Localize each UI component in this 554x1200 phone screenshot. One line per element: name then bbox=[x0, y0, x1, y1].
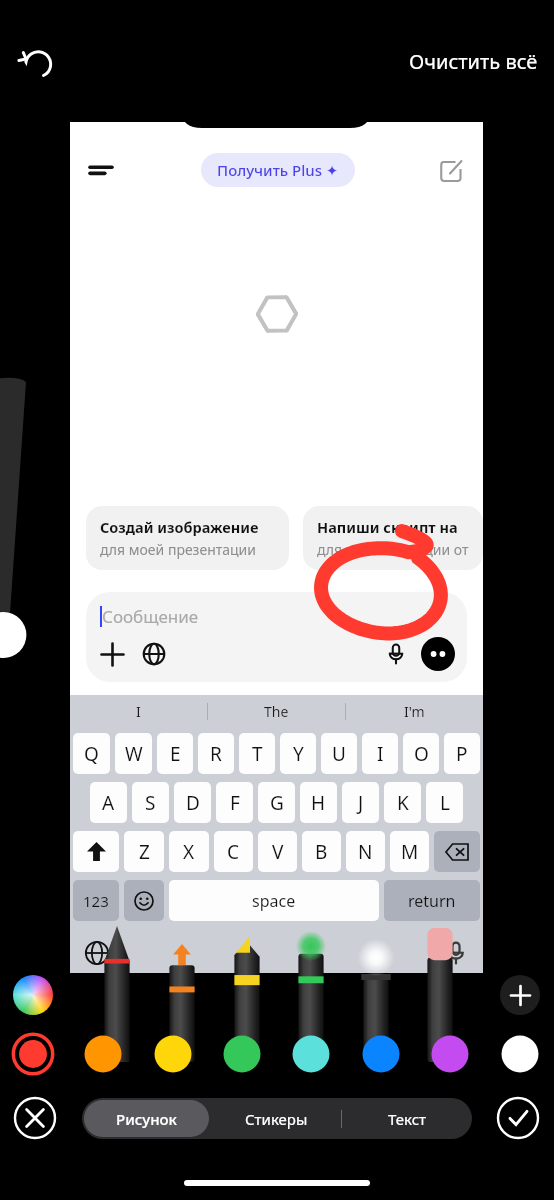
button[interactable]: Color picker bbox=[13, 975, 53, 1015]
staticText: U bbox=[332, 741, 346, 767]
button[interactable]: Color swatch bbox=[287, 1030, 335, 1078]
button[interactable]: F bbox=[216, 782, 253, 823]
button[interactable]: N bbox=[346, 831, 385, 872]
button[interactable]: I bbox=[362, 733, 398, 774]
button[interactable]: Menu bbox=[88, 156, 116, 184]
staticText: H bbox=[311, 790, 326, 816]
button[interactable]: Color swatch bbox=[149, 1030, 197, 1078]
button[interactable]: Attach bbox=[100, 642, 125, 667]
staticText: T bbox=[252, 741, 263, 767]
staticText: Напиши скрипт на Py bbox=[317, 517, 469, 537]
button[interactable]: Voice mode bbox=[421, 637, 455, 671]
staticText: P bbox=[456, 741, 468, 767]
button[interactable]: H bbox=[300, 782, 337, 823]
staticText: B bbox=[315, 839, 328, 865]
staticText: D bbox=[186, 790, 200, 816]
staticText: J bbox=[358, 790, 364, 816]
button[interactable]: Z bbox=[124, 831, 164, 872]
button[interactable]: Emoji bbox=[124, 880, 164, 921]
staticText: X bbox=[183, 839, 195, 865]
button[interactable]: Получить Plus ✦ bbox=[201, 153, 355, 187]
button[interactable]: Сообщение bbox=[86, 592, 467, 682]
button[interactable]: Drawing tool bbox=[96, 926, 138, 1062]
button[interactable]: E bbox=[157, 733, 193, 774]
button[interactable]: U bbox=[321, 733, 357, 774]
button[interactable]: V bbox=[258, 831, 297, 872]
button[interactable]: Undo bbox=[8, 34, 62, 88]
button[interactable]: J bbox=[342, 782, 379, 823]
button[interactable]: Q bbox=[73, 733, 110, 774]
staticText: Z bbox=[139, 839, 150, 865]
staticText: Получить Plus ✦ bbox=[217, 160, 339, 180]
button[interactable]: space bbox=[169, 880, 379, 921]
staticText: S bbox=[145, 790, 156, 816]
button[interactable]: I'm bbox=[346, 695, 483, 728]
button[interactable]: Drawing tool bbox=[290, 936, 332, 1062]
button[interactable]: Рисунок bbox=[84, 1100, 209, 1137]
button[interactable]: Очистить всё bbox=[409, 48, 538, 75]
staticText: F bbox=[230, 790, 240, 816]
button[interactable]: Drawing tool bbox=[355, 952, 397, 1062]
button[interactable]: Dictate bbox=[384, 642, 408, 666]
staticText: I bbox=[136, 702, 141, 721]
button[interactable]: T bbox=[239, 733, 275, 774]
button[interactable]: P bbox=[444, 733, 480, 774]
button[interactable]: X bbox=[169, 831, 209, 872]
button[interactable]: 123 bbox=[73, 880, 119, 921]
button[interactable]: Change keyboard bbox=[84, 940, 110, 966]
button[interactable]: C bbox=[214, 831, 253, 872]
button[interactable]: return bbox=[384, 880, 480, 921]
button[interactable]: Done bbox=[496, 1096, 540, 1140]
button[interactable]: O bbox=[403, 733, 439, 774]
button[interactable]: Создай изображение bbox=[86, 506, 289, 570]
staticText: 123 bbox=[83, 891, 109, 911]
button[interactable]: D bbox=[174, 782, 211, 823]
button[interactable]: K bbox=[384, 782, 421, 823]
button[interactable]: A bbox=[90, 782, 127, 823]
button[interactable]: Color swatch bbox=[79, 1030, 127, 1078]
button[interactable]: R bbox=[198, 733, 234, 774]
staticText: Q bbox=[84, 741, 99, 767]
button[interactable]: Напиши скрипт на Py bbox=[303, 506, 483, 570]
staticText: K bbox=[397, 790, 409, 816]
button[interactable]: Текст bbox=[342, 1098, 472, 1139]
button[interactable]: Color swatch bbox=[357, 1030, 405, 1078]
staticText: Очистить всё bbox=[409, 48, 538, 75]
staticText: Стикеры bbox=[245, 1109, 308, 1129]
button[interactable]: S bbox=[132, 782, 169, 823]
button[interactable]: Backspace bbox=[434, 831, 480, 872]
button[interactable]: The bbox=[208, 695, 345, 728]
button[interactable]: B bbox=[302, 831, 341, 872]
button[interactable]: I bbox=[70, 695, 207, 728]
staticText: N bbox=[358, 839, 373, 865]
button[interactable]: Drawing tool bbox=[419, 928, 461, 1062]
button[interactable]: L bbox=[426, 782, 463, 823]
button[interactable]: Drawing tool bbox=[226, 936, 268, 1062]
button[interactable]: Dictation bbox=[443, 940, 469, 966]
staticText: Сообщение bbox=[102, 605, 199, 628]
button[interactable]: Color swatch bbox=[496, 1030, 544, 1078]
button[interactable]: Стикеры bbox=[211, 1098, 341, 1139]
button[interactable]: M bbox=[390, 831, 429, 872]
staticText: I bbox=[377, 741, 384, 767]
button[interactable]: Shift bbox=[73, 831, 119, 872]
button[interactable]: Color swatch bbox=[9, 1030, 57, 1078]
button[interactable]: Color swatch bbox=[426, 1030, 474, 1078]
button[interactable]: Add tool bbox=[500, 975, 540, 1015]
staticText: M bbox=[401, 839, 419, 865]
staticText: Создай изображение bbox=[100, 517, 259, 537]
button[interactable]: Y bbox=[280, 733, 316, 774]
button[interactable]: Drawing tool bbox=[161, 944, 203, 1062]
button[interactable]: W bbox=[115, 733, 152, 774]
button[interactable]: G bbox=[258, 782, 295, 823]
staticText: для автоматизации от bbox=[317, 540, 469, 559]
staticText: W bbox=[125, 741, 143, 767]
button[interactable]: Search the web bbox=[142, 642, 166, 666]
staticText: L bbox=[440, 790, 450, 816]
button[interactable]: New chat bbox=[440, 158, 465, 183]
staticText: для моей презентации bbox=[100, 540, 257, 559]
button[interactable]: Cancel bbox=[13, 1096, 57, 1140]
staticText: The bbox=[264, 702, 289, 721]
staticText: return bbox=[408, 890, 456, 912]
button[interactable]: Color swatch bbox=[218, 1030, 266, 1078]
